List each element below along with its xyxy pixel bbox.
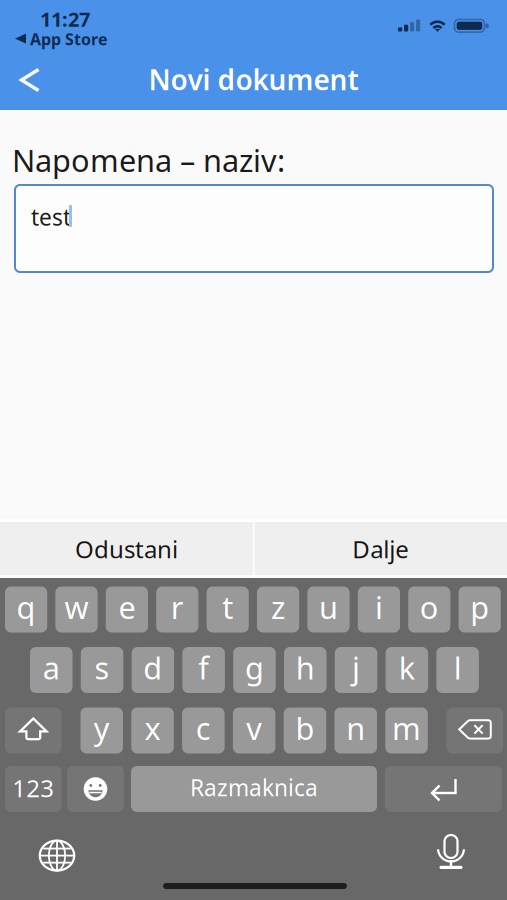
button[interactable]: p: [459, 586, 501, 632]
button[interactable]: Shift: [5, 707, 61, 753]
staticText: App Store: [30, 28, 108, 50]
button[interactable]: Next keyboard: [35, 834, 79, 878]
staticText: Razmaknica: [190, 772, 318, 802]
staticText: f: [198, 647, 209, 688]
staticText: y: [94, 708, 110, 748]
staticText: t: [222, 587, 233, 627]
staticText: r: [171, 587, 184, 627]
button[interactable]: x: [131, 707, 174, 753]
button[interactable]: i: [358, 586, 400, 632]
button[interactable]: Emoji: [67, 766, 124, 812]
button[interactable]: j: [335, 647, 377, 693]
button[interactable]: u: [307, 586, 350, 632]
button[interactable]: a: [30, 647, 72, 693]
staticText: j: [352, 647, 360, 688]
staticText: m: [392, 708, 421, 748]
button[interactable]: m: [385, 707, 428, 753]
button[interactable]: l: [436, 647, 479, 693]
staticText: v: [246, 708, 262, 748]
staticText: u: [319, 587, 338, 627]
button[interactable]: Back: [8, 58, 52, 102]
staticText: a: [43, 647, 60, 688]
button[interactable]: o: [408, 586, 450, 632]
staticText: 123: [12, 772, 54, 804]
button[interactable]: t: [207, 586, 249, 632]
staticText: Dalje: [352, 533, 409, 565]
button[interactable]: y: [80, 707, 123, 753]
button[interactable]: Razmaknica: [131, 766, 377, 812]
button[interactable]: App Store: [30, 31, 140, 47]
staticText: test: [31, 202, 71, 232]
button[interactable]: q: [5, 586, 47, 632]
button[interactable]: Return: [385, 766, 502, 812]
button[interactable]: 123: [5, 766, 61, 812]
button[interactable]: Odustani: [0, 521, 253, 577]
button[interactable]: r: [156, 586, 198, 632]
button[interactable]: d: [132, 647, 174, 693]
staticText: Novi dokument: [148, 61, 358, 98]
staticText: l: [454, 647, 462, 688]
button[interactable]: Dictation: [429, 831, 473, 875]
button[interactable]: Delete: [446, 707, 503, 753]
staticText: x: [145, 708, 161, 748]
staticText: q: [17, 587, 36, 627]
button[interactable]: s: [81, 647, 123, 693]
button[interactable]: c: [182, 707, 225, 753]
staticText: Napomena – naziv:: [12, 140, 285, 180]
staticText: h: [296, 647, 315, 688]
button[interactable]: z: [257, 586, 299, 632]
staticText: w: [64, 587, 88, 627]
staticText: k: [399, 647, 415, 688]
staticText: g: [245, 647, 264, 688]
button[interactable]: g: [233, 647, 276, 693]
staticText: 11:27: [40, 6, 90, 32]
staticText: p: [470, 587, 489, 627]
staticText: Odustani: [75, 533, 178, 565]
button[interactable]: n: [334, 707, 377, 753]
button[interactable]: f: [182, 647, 225, 693]
staticText: c: [196, 708, 211, 748]
staticText: e: [118, 587, 135, 627]
staticText: d: [143, 647, 162, 688]
staticText: i: [375, 587, 383, 627]
button[interactable]: h: [284, 647, 326, 693]
staticText: o: [420, 587, 439, 627]
button[interactable]: w: [55, 586, 98, 632]
button[interactable]: b: [284, 707, 326, 753]
staticText: z: [271, 587, 285, 627]
staticText: n: [346, 708, 365, 748]
button[interactable]: e: [106, 586, 148, 632]
button[interactable]: k: [386, 647, 428, 693]
staticText: s: [94, 647, 109, 688]
button[interactable]: Dalje: [255, 521, 507, 577]
button[interactable]: v: [233, 707, 275, 753]
staticText: b: [295, 708, 314, 748]
